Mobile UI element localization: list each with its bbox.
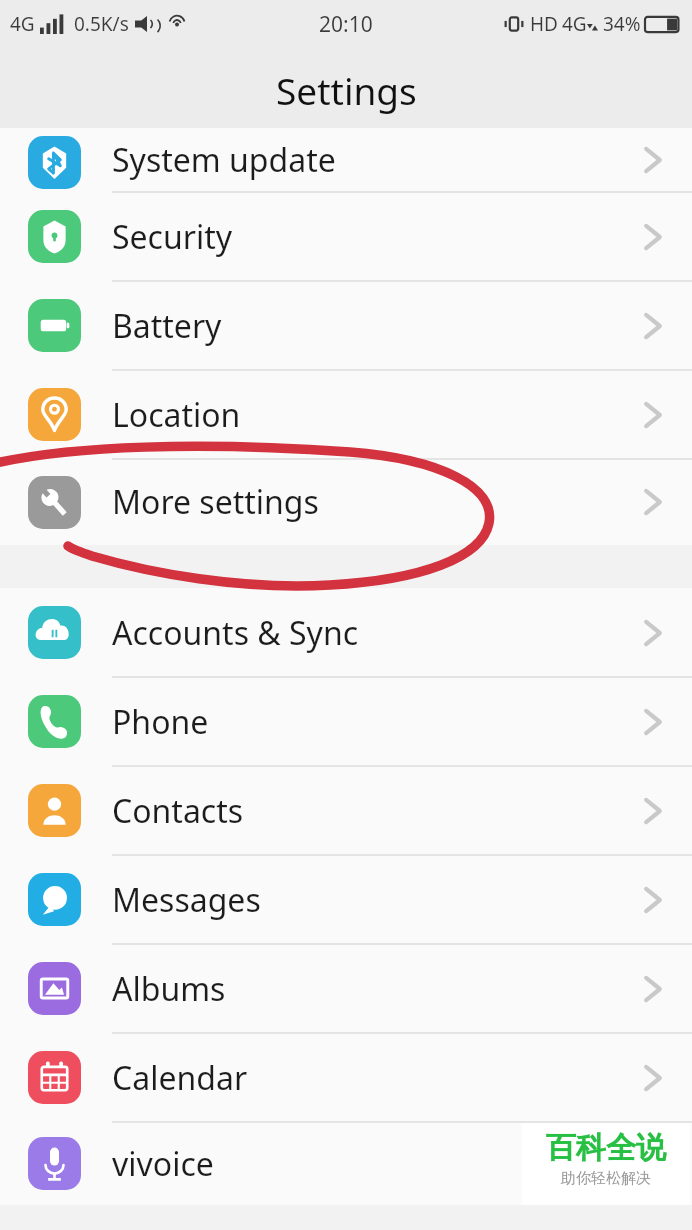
staticText: Calendar bbox=[112, 1056, 248, 1100]
staticText: Phone bbox=[112, 700, 209, 744]
staticText: Location bbox=[112, 393, 241, 437]
button[interactable]: vivoice bbox=[0, 1122, 692, 1205]
button[interactable]: Security bbox=[0, 192, 692, 281]
button[interactable]: Contacts bbox=[0, 766, 692, 855]
staticText: 0.5K/s bbox=[74, 11, 129, 37]
staticText: vivoice bbox=[112, 1142, 214, 1186]
button[interactable]: More settings bbox=[0, 459, 692, 545]
staticText: HD bbox=[530, 11, 558, 37]
staticText: More settings bbox=[112, 480, 319, 524]
staticText: 34% bbox=[603, 11, 641, 37]
button[interactable]: System update bbox=[0, 128, 692, 192]
staticText: Settings bbox=[276, 65, 417, 115]
button[interactable]: Location bbox=[0, 370, 692, 459]
staticText: Security bbox=[112, 215, 233, 259]
staticText: 4G bbox=[10, 11, 35, 37]
staticText: 百科全说 bbox=[546, 1129, 666, 1167]
button[interactable]: Accounts & Sync bbox=[0, 588, 692, 677]
staticText: Messages bbox=[112, 878, 261, 922]
button[interactable]: Messages bbox=[0, 855, 692, 944]
button[interactable]: Phone bbox=[0, 677, 692, 766]
button[interactable]: Battery bbox=[0, 281, 692, 370]
staticText: Battery bbox=[112, 304, 222, 348]
staticText: System update bbox=[112, 138, 336, 182]
staticText: Contacts bbox=[112, 789, 244, 833]
button[interactable]: Calendar bbox=[0, 1033, 692, 1122]
staticText: 20:10 bbox=[319, 10, 373, 39]
staticText: 4G bbox=[562, 11, 587, 37]
staticText: 助你轻松解决 bbox=[561, 1169, 651, 1188]
staticText: Accounts & Sync bbox=[112, 611, 359, 655]
button[interactable]: Albums bbox=[0, 944, 692, 1033]
staticText: Albums bbox=[112, 967, 226, 1011]
